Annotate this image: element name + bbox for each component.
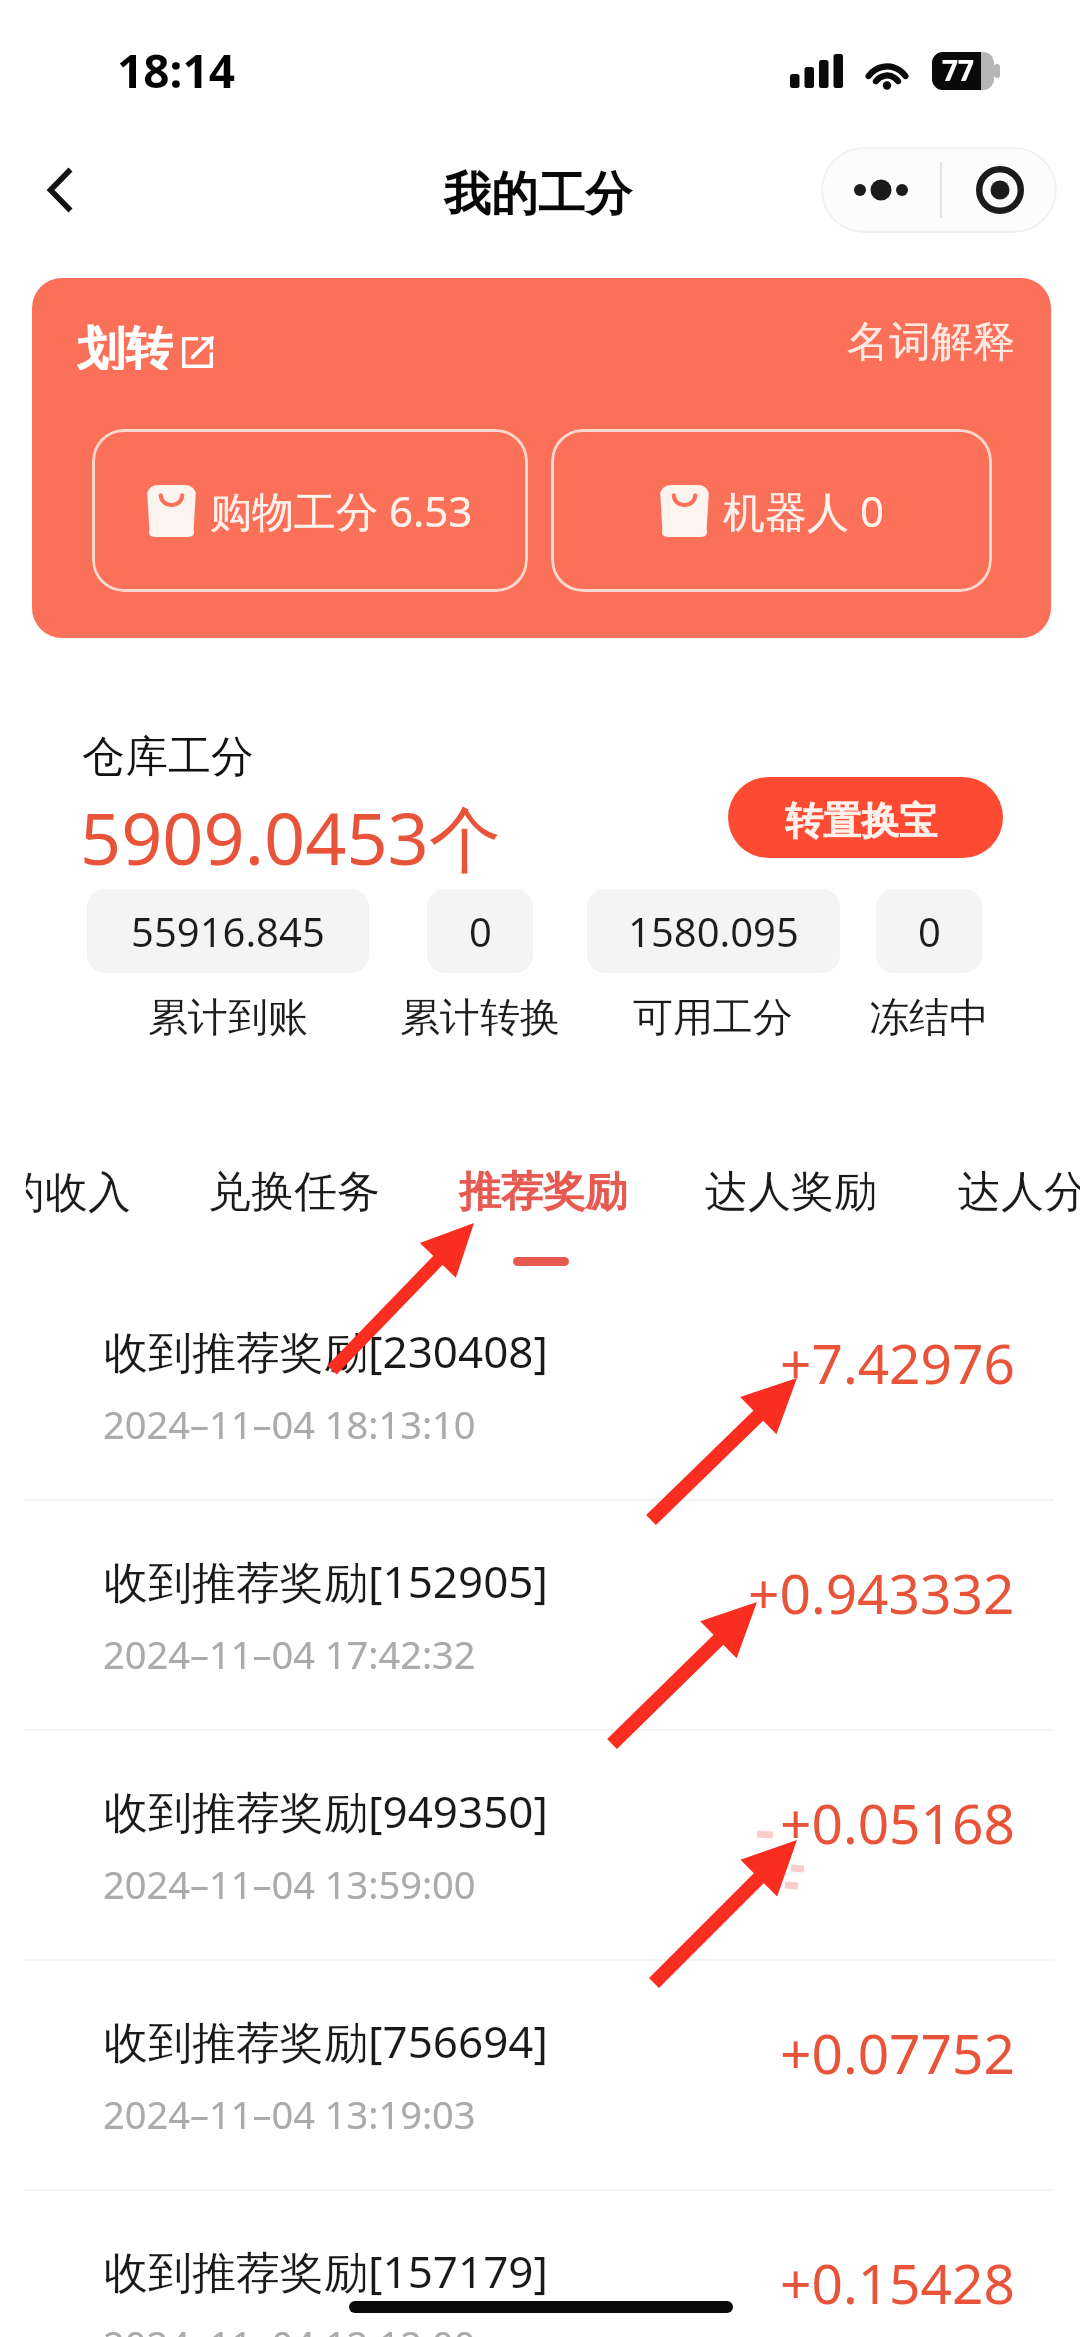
button[interactable]: 的收入 <box>26 1140 186 1244</box>
staticText: 转置换宝 <box>785 797 937 845</box>
staticText: 我的工分 <box>444 165 632 224</box>
staticText: 收到推荐奖励[230408] <box>104 1321 548 1381</box>
button[interactable]: 55916.845 <box>87 889 369 973</box>
staticText: 2024–11–04 18:13:10 <box>103 1398 476 1450</box>
button[interactable]: 收到推荐奖励[157179] <box>0 2191 1080 2337</box>
button[interactable]: Back <box>20 150 100 230</box>
button[interactable]: 收到推荐奖励[230408] <box>0 1271 1080 1502</box>
button[interactable]: 0 <box>876 889 982 973</box>
staticText: 冻结中 <box>869 992 989 1042</box>
staticText: 达人奖励 <box>705 1165 877 1219</box>
button[interactable]: More <box>821 147 940 233</box>
staticText: 累计到账 <box>148 992 308 1042</box>
button[interactable]: 购物工分 6.53 <box>92 429 528 592</box>
staticText: 77 <box>942 52 975 89</box>
staticText: 2024–11–04 13:19:03 <box>103 2088 476 2140</box>
staticText: 机器人 0 <box>723 482 884 539</box>
staticText: 18:14 <box>117 39 236 102</box>
staticText: +0.05168 <box>780 1785 1015 1860</box>
staticText: 兑换任务 <box>208 1165 380 1219</box>
button[interactable]: 名词解释 <box>847 316 1015 369</box>
staticText: 的收入 <box>26 1166 131 1220</box>
button[interactable]: 划转 <box>32 278 1051 638</box>
staticText: 0 <box>918 904 941 958</box>
staticText: 推荐奖励 <box>459 1166 627 1219</box>
button[interactable]: 收到推荐奖励[756694] <box>0 1961 1080 2192</box>
staticText: 0 <box>469 904 492 958</box>
staticText: 收到推荐奖励[152905] <box>104 1551 548 1611</box>
staticText: 55916.845 <box>131 904 325 958</box>
staticText: 收到推荐奖励[949350] <box>104 1781 548 1841</box>
staticText: 收到推荐奖励[157179] <box>104 2241 548 2301</box>
button[interactable]: Close mini program <box>942 147 1057 233</box>
staticText: 收到推荐奖励[756694] <box>104 2011 548 2071</box>
staticText: 1580.095 <box>628 904 799 958</box>
staticText: +0.943332 <box>748 1555 1015 1630</box>
staticText: 累计转换 <box>400 992 560 1042</box>
button[interactable]: 兑换任务 <box>186 1140 402 1244</box>
staticText: 2024–11–04 13:59:00 <box>103 1858 476 1910</box>
button[interactable]: 转置换宝 <box>728 777 1003 858</box>
button[interactable]: 推荐奖励 <box>437 1140 649 1244</box>
staticText: 购物工分 6.53 <box>210 482 473 539</box>
staticText: 仓库工分 <box>82 730 254 784</box>
button[interactable]: 划转 <box>77 320 217 370</box>
staticText: +7.42976 <box>780 1325 1015 1400</box>
button[interactable]: 收到推荐奖励[152905] <box>0 1501 1080 1732</box>
button[interactable]: 1580.095 <box>587 889 840 973</box>
button[interactable]: 达人分 <box>936 1140 1080 1244</box>
button[interactable]: 机器人 0 <box>551 429 992 592</box>
staticText: 5909.0453个 <box>80 788 501 886</box>
staticText: 划转 <box>77 320 173 370</box>
staticText: 可用工分 <box>633 992 793 1042</box>
button[interactable]: 0 <box>427 889 533 973</box>
staticText: 2024–11–04 17:42:32 <box>103 1628 476 1680</box>
staticText: +0.15428 <box>780 2245 1015 2320</box>
staticText: 2024–11–04 12:12:00 <box>103 2318 476 2337</box>
staticText: 达人分 <box>958 1165 1080 1219</box>
staticText: +0.07752 <box>780 2015 1015 2090</box>
button[interactable]: 达人奖励 <box>683 1140 899 1244</box>
button[interactable]: 收到推荐奖励[949350] <box>0 1731 1080 1962</box>
